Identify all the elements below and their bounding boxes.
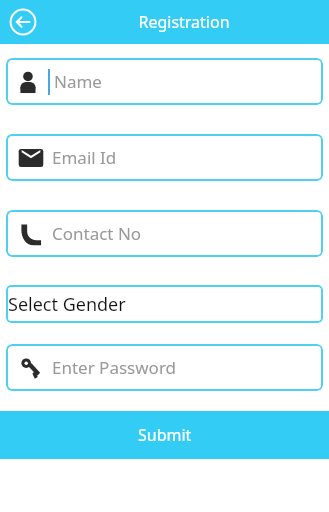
staticText: Email Id [52,146,117,169]
button[interactable]: Select Gender [6,285,323,323]
staticText: Name [54,70,102,93]
staticText: Registration [138,11,230,33]
button[interactable]: Email Id [6,134,323,181]
staticText: Enter Password [52,356,177,379]
staticText: Submit [138,424,192,446]
button[interactable]: Enter Password [6,344,323,391]
button[interactable]: Back [6,5,40,39]
button[interactable]: Contact No [6,210,323,257]
button[interactable]: Submit [0,411,329,459]
staticText: Select Gender [8,292,126,317]
button[interactable]: Name [6,58,323,105]
staticText: Contact No [52,222,142,245]
